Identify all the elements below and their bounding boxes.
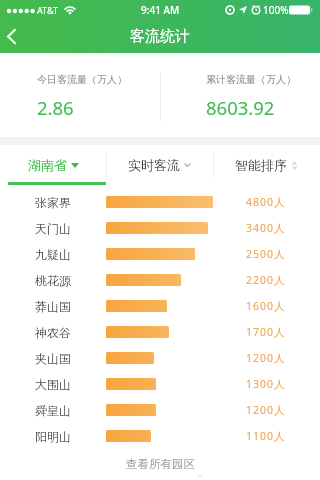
button[interactable]: 阳明山	[0, 423, 320, 449]
staticText: 1200人	[246, 403, 286, 417]
button[interactable]: 实时客流	[106, 145, 213, 185]
button[interactable]: 智能排序	[213, 145, 320, 185]
staticText: 九疑山	[35, 247, 71, 262]
staticText: 1200人	[246, 351, 286, 365]
button[interactable]: 查看所有园区	[0, 449, 320, 480]
staticText: 张家界	[35, 195, 71, 210]
button[interactable]: 夹山国	[0, 345, 320, 371]
staticText: 8603.92	[206, 95, 275, 120]
staticText: 湖南省	[28, 157, 67, 173]
button[interactable]: 九疑山	[0, 241, 320, 267]
button[interactable]: 湖南省	[0, 145, 106, 185]
staticText: 1300人	[246, 377, 286, 391]
staticText: 查看所有园区	[126, 457, 195, 471]
staticText: 1600人	[246, 299, 286, 313]
staticText: 客流统计	[130, 27, 190, 46]
staticText: 阳明山	[35, 429, 71, 444]
staticText: 舜皇山	[35, 403, 71, 418]
staticText: 桃花源	[35, 273, 71, 288]
staticText: 2500人	[246, 247, 286, 261]
staticText: 4800人	[246, 195, 286, 209]
staticText: 夹山国	[35, 351, 71, 366]
staticText: 大围山	[35, 377, 71, 392]
staticText: 累计客流量（万人）	[206, 73, 296, 86]
button[interactable]: 大围山	[0, 371, 320, 397]
button[interactable]: 莽山国	[0, 293, 320, 319]
button[interactable]: 张家界	[0, 189, 320, 215]
button[interactable]: 桃花源	[0, 267, 320, 293]
staticText: 1700人	[246, 325, 286, 339]
staticText: 智能排序	[235, 157, 287, 173]
staticText: 神农谷	[35, 325, 71, 340]
staticText: 1100人	[246, 429, 286, 443]
button[interactable]: 神农谷	[0, 319, 320, 345]
staticText: 实时客流	[128, 157, 180, 173]
staticText: 今日客流量（万人）	[37, 73, 127, 86]
staticText: 2.86	[37, 95, 74, 120]
button[interactable]	[0, 20, 32, 53]
staticText: 莽山国	[35, 299, 71, 314]
staticText: 9:41 AM	[141, 3, 180, 17]
staticText: 100%	[263, 3, 289, 17]
button[interactable]: 舜皇山	[0, 397, 320, 423]
staticText: 2200人	[246, 273, 286, 287]
button[interactable]: 天门山	[0, 215, 320, 241]
staticText: 天门山	[35, 221, 71, 236]
staticText: AT&T	[37, 4, 58, 16]
staticText: 3400人	[246, 221, 286, 235]
